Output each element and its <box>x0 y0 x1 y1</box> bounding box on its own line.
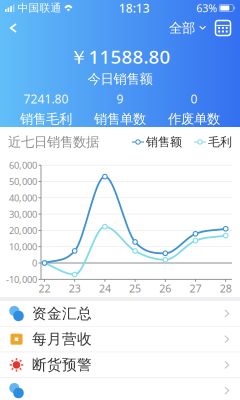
staticText: 销售单数 <box>94 111 146 127</box>
button[interactable]: Calendar <box>215 20 230 35</box>
staticText: 20,000 <box>9 224 37 237</box>
staticText: 10,000 <box>9 240 37 253</box>
staticText: 0 <box>190 91 197 107</box>
staticText: 30,000 <box>9 208 37 220</box>
staticText: 每月营收 <box>32 330 92 348</box>
staticText: 全部 <box>169 20 195 36</box>
staticText: 断货预警 <box>32 356 92 374</box>
button[interactable]: Back <box>0 15 26 41</box>
button[interactable] <box>0 378 240 400</box>
staticText: 22 <box>38 281 50 295</box>
staticText: ￥11588.80 <box>69 44 170 69</box>
button[interactable]: 全部 <box>169 17 207 39</box>
button[interactable]: 资金汇总 <box>0 301 240 326</box>
staticText: 28 <box>220 281 232 295</box>
staticText: 中国联通 <box>14 1 61 14</box>
staticText: 63% <box>196 1 217 15</box>
staticText: 25 <box>129 281 141 295</box>
staticText: 40,000 <box>9 192 37 204</box>
staticText: 18:13 <box>119 0 150 16</box>
staticText: 销售毛利 <box>20 111 72 127</box>
staticText: 今日销售额 <box>87 71 152 87</box>
staticText: 9 <box>116 91 123 107</box>
button[interactable]: 每月营收 <box>0 327 240 352</box>
staticText: 27 <box>189 281 201 295</box>
button[interactable]: 断货预警 <box>0 352 240 377</box>
staticText: 7241.80 <box>23 91 68 107</box>
staticText: 资金汇总 <box>32 304 92 322</box>
staticText: 50,000 <box>9 175 37 188</box>
staticText: 毛利 <box>208 135 232 149</box>
staticText: 23 <box>69 281 81 295</box>
staticText: 24 <box>99 281 111 295</box>
staticText: -10,000 <box>6 273 37 285</box>
staticText: 60,000 <box>9 159 37 171</box>
staticText: 26 <box>159 281 171 295</box>
staticText: 近七日销售数据 <box>8 134 99 150</box>
staticText: 销售额 <box>146 135 182 149</box>
staticText: 作废单数 <box>168 111 220 127</box>
staticText: 0 <box>32 257 37 269</box>
